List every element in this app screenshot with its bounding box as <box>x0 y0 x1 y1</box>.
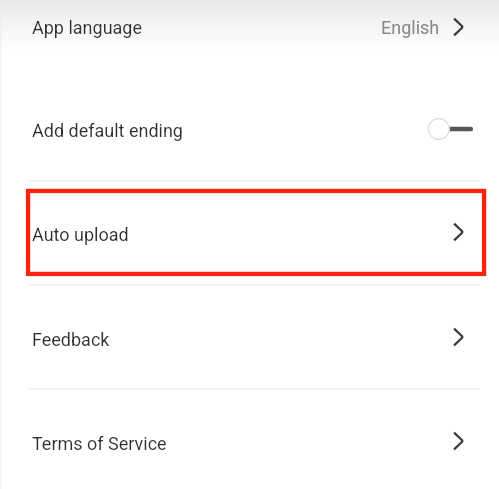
staticText: Auto upload <box>32 224 129 245</box>
other: Open auto upload <box>453 226 464 244</box>
staticText: App language <box>32 17 143 38</box>
button[interactable]: Add default ending <box>0 100 499 160</box>
staticText: Terms of Service <box>32 433 167 454</box>
staticText: Feedback <box>32 329 110 350</box>
staticText: English <box>381 17 440 38</box>
other: Add default ending toggle <box>428 117 472 141</box>
other: Open feedback <box>453 331 464 349</box>
button[interactable]: App language <box>0 0 499 57</box>
other: Open app language <box>453 19 464 37</box>
other: Open terms of service <box>453 435 464 453</box>
button[interactable]: Auto upload <box>0 204 499 264</box>
staticText: Add default ending <box>32 120 183 141</box>
button[interactable]: Feedback <box>0 309 499 369</box>
button[interactable]: Terms of Service <box>0 413 499 473</box>
